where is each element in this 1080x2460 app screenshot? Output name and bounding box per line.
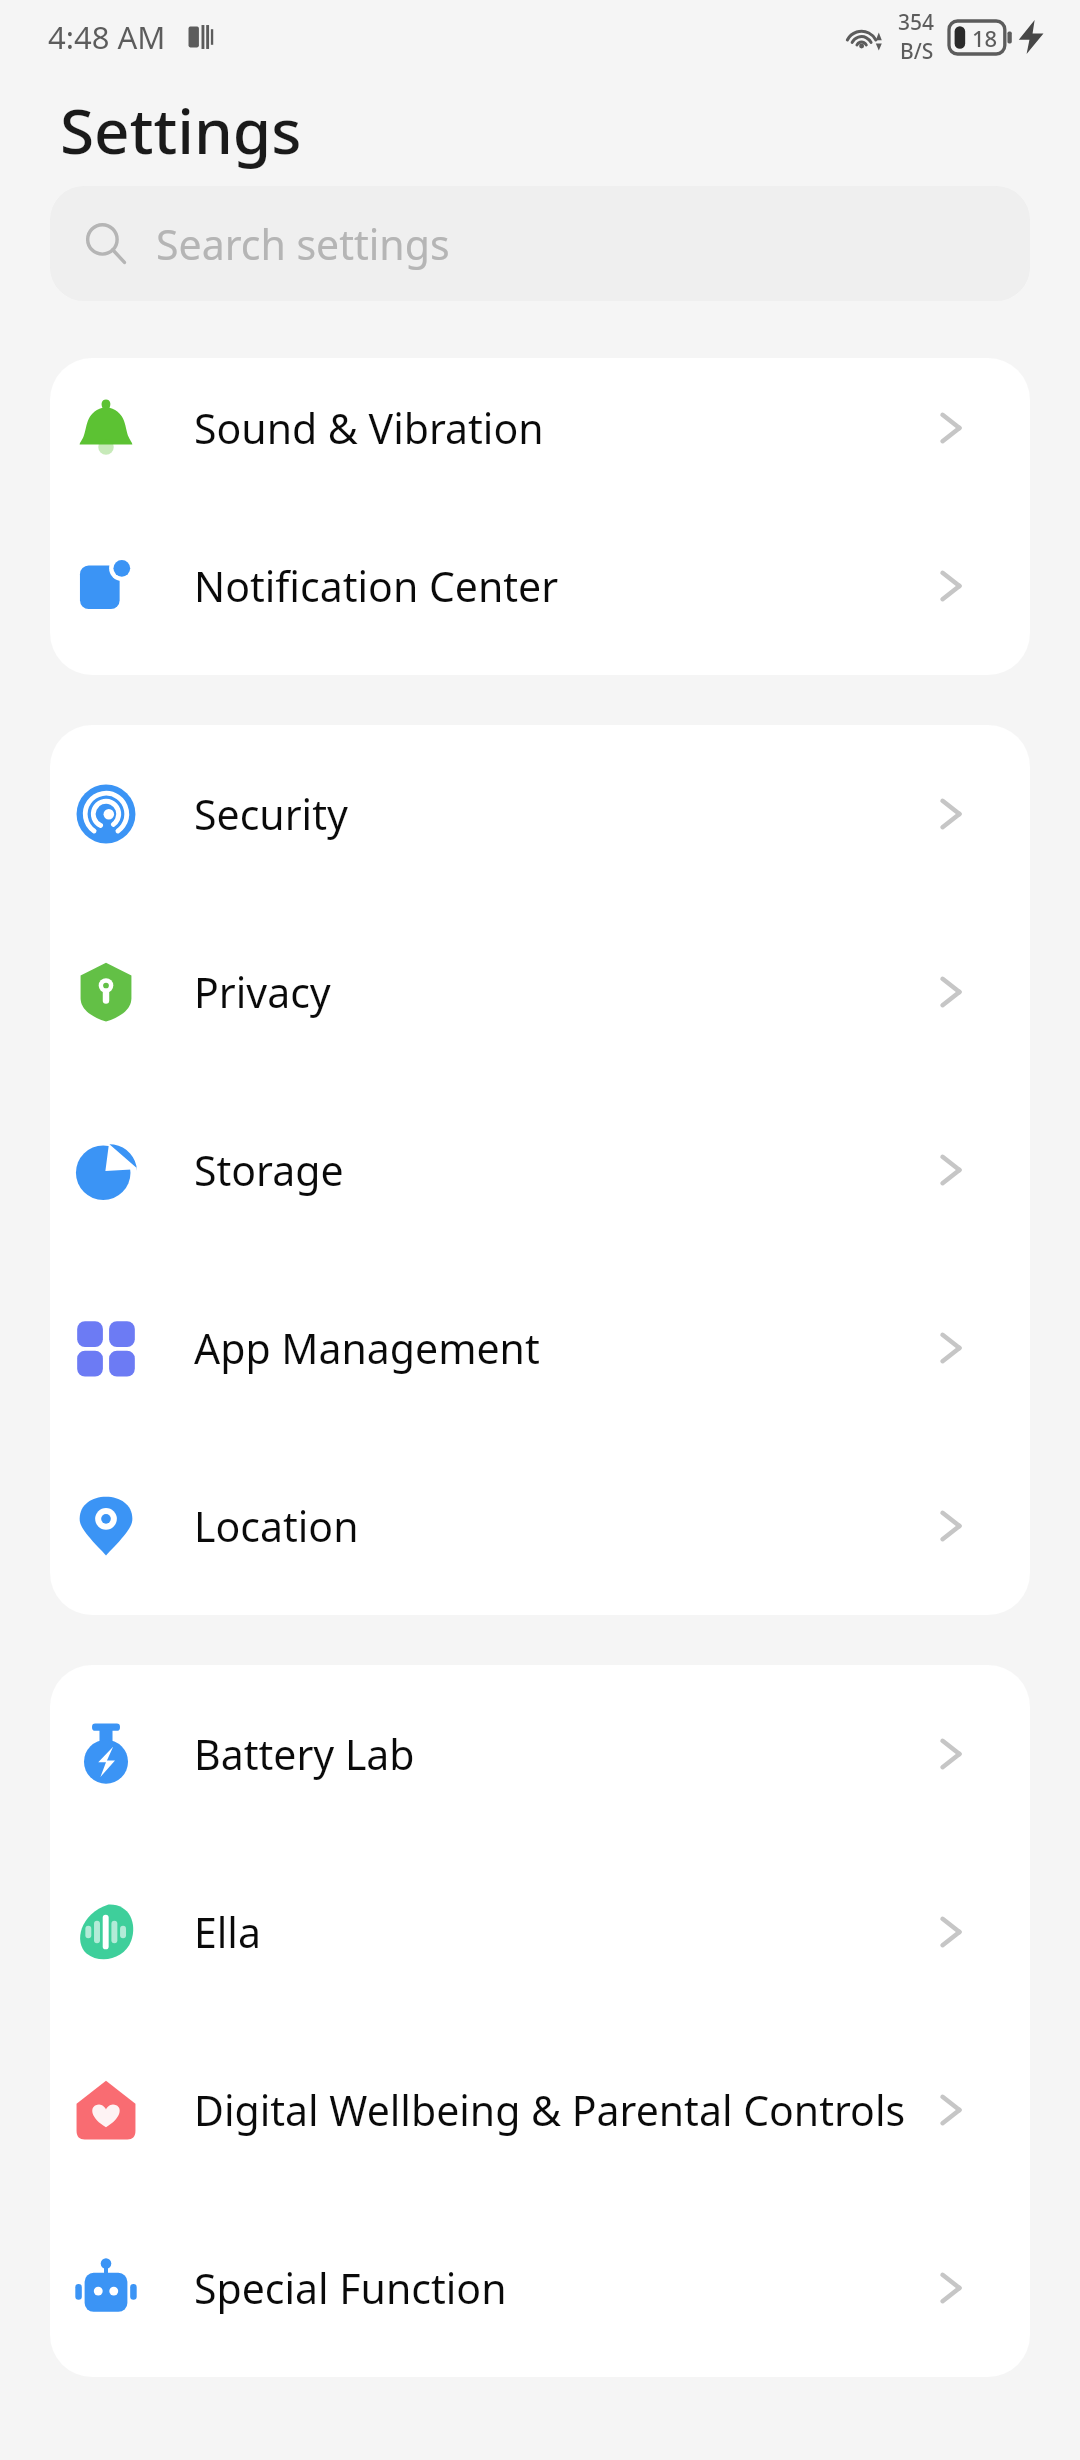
button[interactable]: Search settings	[50, 186, 1030, 301]
other: Open Privacy	[938, 970, 964, 1014]
other: Open Battery Lab	[938, 1732, 964, 1776]
button[interactable]: App Management	[50, 1259, 1030, 1437]
other: Open Security	[938, 792, 964, 836]
other: Open Location	[938, 1504, 964, 1548]
button[interactable]: Battery Lab	[50, 1665, 1030, 1843]
staticText: B/S	[900, 37, 934, 66]
button[interactable]: Privacy	[50, 903, 1030, 1081]
button[interactable]: Sound & Vibration	[50, 358, 1030, 497]
button[interactable]: Security	[50, 725, 1030, 903]
staticText: Ella	[194, 1904, 261, 1960]
other: Open Sound & Vibration	[938, 406, 964, 450]
staticText: 354	[898, 8, 935, 37]
staticText: Security	[194, 786, 348, 842]
staticText: Sound & Vibration	[194, 400, 544, 456]
button[interactable]: Ella	[50, 1843, 1030, 2021]
staticText: App Management	[194, 1320, 540, 1376]
button[interactable]: Storage	[50, 1081, 1030, 1259]
staticText: Special Function	[194, 2260, 507, 2316]
staticText: 18	[972, 23, 998, 53]
button[interactable]: Digital Wellbeing & Parental Controls	[50, 2021, 1030, 2199]
staticText: Search settings	[156, 216, 450, 272]
other: Open Storage	[938, 1148, 964, 1192]
button[interactable]: Notification Center	[50, 497, 1030, 675]
other: Open App Management	[938, 1326, 964, 1370]
staticText: Notification Center	[194, 558, 559, 614]
other: Open Ella	[938, 1910, 964, 1954]
button[interactable]: Location	[50, 1437, 1030, 1615]
staticText: Storage	[194, 1142, 344, 1198]
staticText: Battery Lab	[194, 1726, 415, 1782]
staticText: Digital Wellbeing & Parental Controls	[194, 2082, 906, 2138]
staticText: Settings	[60, 88, 302, 172]
staticText: Location	[194, 1498, 359, 1554]
button[interactable]: Special Function	[50, 2199, 1030, 2377]
other: Open Notification Center	[938, 564, 964, 608]
staticText: Privacy	[194, 964, 331, 1020]
other: Open Special Function	[938, 2266, 964, 2310]
other: Open Digital Wellbeing & Parental Contro…	[938, 2088, 964, 2132]
staticText: 4:48 AM	[48, 16, 166, 58]
